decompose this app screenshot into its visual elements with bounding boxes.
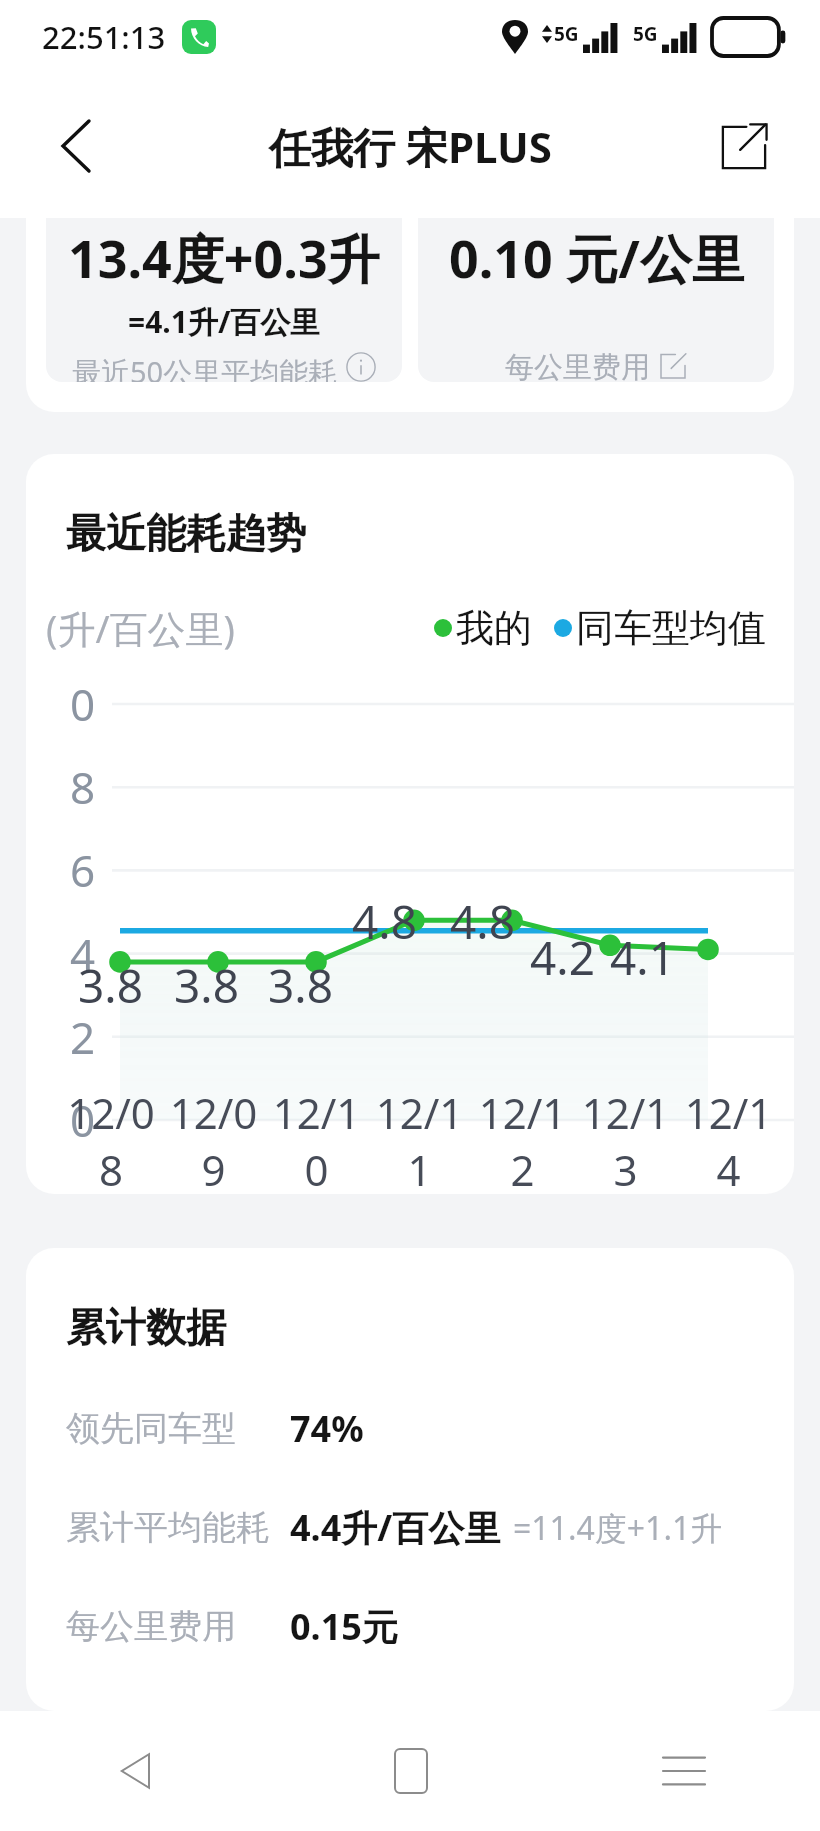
staticText: 0.15元 bbox=[290, 1602, 398, 1651]
staticText: 22:51:13 bbox=[42, 16, 166, 58]
staticText: 我的 bbox=[456, 604, 532, 652]
staticText: 4.8 bbox=[352, 890, 417, 953]
staticText: 3.8 bbox=[78, 954, 143, 1017]
staticText: 74% bbox=[290, 1404, 364, 1453]
staticText: 0 bbox=[70, 1090, 96, 1150]
staticText: 8 bbox=[70, 757, 96, 817]
staticText: 2 bbox=[70, 1007, 96, 1067]
staticText: 5G bbox=[554, 21, 579, 47]
button[interactable]: 每公里费用 bbox=[66, 1602, 758, 1651]
button[interactable]: 累计平均能耗 bbox=[66, 1503, 758, 1552]
button[interactable]: Back bbox=[0, 1711, 274, 1831]
staticText: 12/10 bbox=[265, 1084, 368, 1194]
staticText: 12/12 bbox=[471, 1084, 574, 1194]
staticText: 同车型均值 bbox=[576, 604, 766, 652]
staticText: 最近50公里平均能耗 bbox=[72, 352, 338, 382]
staticText: 累计数据 bbox=[66, 1302, 226, 1352]
staticText: 4.2 bbox=[530, 926, 595, 989]
staticText: 12/13 bbox=[574, 1084, 677, 1194]
staticText: 每公里费用 bbox=[66, 1605, 236, 1648]
staticText: 12/11 bbox=[368, 1084, 471, 1194]
button[interactable]: 13.4度+0.3升 bbox=[46, 218, 402, 382]
staticText: 13.4度+0.3升 bbox=[68, 222, 380, 293]
staticText: =11.4度+1.1升 bbox=[513, 1506, 723, 1550]
staticText: 12/08 bbox=[60, 1084, 162, 1194]
staticText: 0.10 元/公里 bbox=[449, 222, 744, 293]
staticText: 5G bbox=[633, 21, 658, 47]
staticText: 4.1 bbox=[610, 926, 675, 989]
staticText: 4.4升/百公里 bbox=[290, 1503, 501, 1552]
staticText: 3.8 bbox=[268, 954, 333, 1017]
button[interactable]: Share bbox=[690, 92, 798, 200]
button[interactable]: 0.10 元/公里 bbox=[418, 218, 774, 382]
button[interactable]: Recent apps bbox=[547, 1711, 820, 1831]
staticText: 最近能耗趋势 bbox=[66, 508, 306, 558]
button[interactable]: 领先同车型 bbox=[66, 1404, 758, 1453]
button[interactable]: Home bbox=[274, 1711, 547, 1831]
staticText: 任我行 宋PLUS bbox=[269, 118, 552, 175]
staticText: 领先同车型 bbox=[66, 1407, 236, 1450]
staticText: 每公里费用 bbox=[505, 349, 650, 382]
staticText: 12/09 bbox=[162, 1084, 265, 1194]
staticText: (升/百公里) bbox=[46, 602, 235, 654]
staticText: 6 bbox=[70, 840, 96, 900]
staticText: =4.1升/百公里 bbox=[128, 301, 321, 342]
staticText: 12/14 bbox=[677, 1084, 780, 1194]
button[interactable]: Back bbox=[18, 88, 134, 204]
staticText: 4 bbox=[70, 924, 96, 984]
staticText: 0 bbox=[70, 674, 96, 734]
staticText: 累计平均能耗 bbox=[66, 1506, 270, 1549]
staticText: 3.8 bbox=[174, 954, 239, 1017]
staticText: 4.8 bbox=[450, 890, 515, 953]
